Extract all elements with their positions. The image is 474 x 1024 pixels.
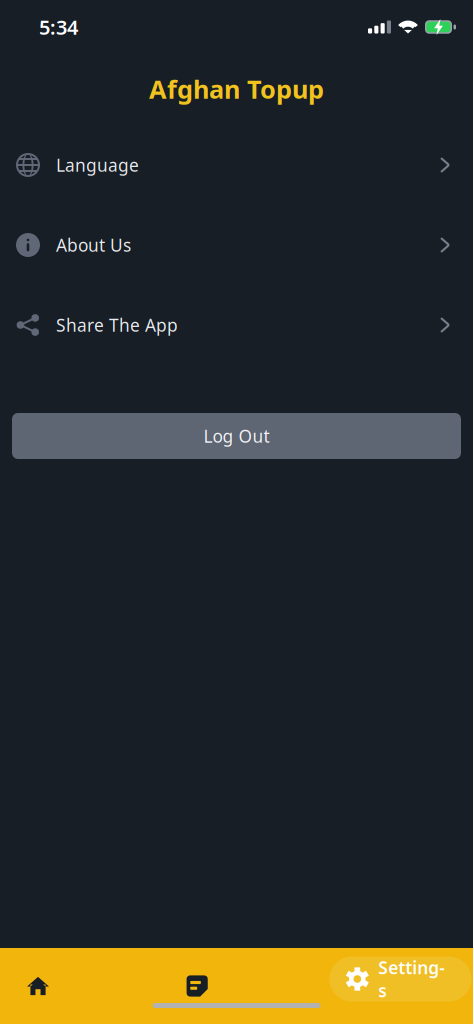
staticText: Settings: [378, 956, 445, 1002]
button[interactable]: Home: [0, 948, 158, 1024]
button[interactable]: Log Out: [12, 413, 461, 459]
button[interactable]: Settings: [315, 948, 473, 1024]
staticText: 5:34: [39, 14, 78, 40]
button[interactable]: Notes: [158, 948, 315, 1024]
staticText: Afghan Topup: [149, 72, 324, 106]
button[interactable]: Language: [0, 125, 473, 205]
staticText: Language: [56, 153, 139, 176]
button[interactable]: Share The App: [0, 285, 473, 365]
button[interactable]: About Us: [0, 205, 473, 285]
staticText: Log Out: [203, 424, 269, 447]
staticText: About Us: [56, 233, 131, 256]
staticText: Share The App: [56, 313, 178, 336]
